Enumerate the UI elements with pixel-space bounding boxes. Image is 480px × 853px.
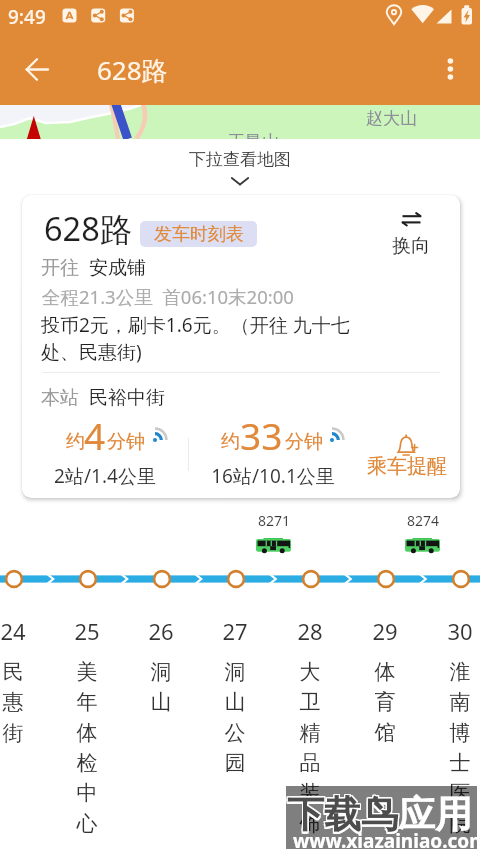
staticText: 体 [361,659,409,685]
staticText: 体 [63,720,111,746]
button[interactable]: 24 [0,616,38,853]
staticText: 检 [63,750,111,776]
staticText: 公 [211,720,259,746]
staticText: 8274 [393,511,453,530]
staticText: 饰 [286,811,334,837]
button[interactable]: 29 [362,616,410,853]
staticText: 28 [286,616,334,646]
staticText: www.xiazainiao.com [293,828,480,853]
staticText: 下载鸟 [287,791,398,838]
staticText: 山 [211,689,259,715]
staticText: 山 [137,689,185,715]
staticText: 换向 [392,234,430,258]
staticText: 25 [63,616,111,646]
staticText: 心 [63,811,111,837]
staticText: 29 [361,616,409,646]
staticText: 民裕中街 [89,386,165,410]
staticText: 应用 [398,791,472,838]
staticText: 27 [211,616,259,646]
staticText: 下载鸟 [288,793,399,840]
button[interactable] [381,208,441,260]
staticText: 街 [0,720,37,746]
staticText: 卫 [286,689,334,715]
staticText: 下载鸟 [287,793,398,840]
staticText: 下载鸟 [288,791,399,838]
staticText: 赵大山 [366,108,417,129]
staticText: 中 [63,780,111,806]
staticText: 30 [436,616,480,646]
staticText: 年 [63,689,111,715]
staticText: 精 [286,720,334,746]
staticText: 洞 [211,659,259,685]
button[interactable]: 25 [64,616,112,853]
staticText: 下拉查看地图 [189,149,291,170]
staticText: 投币2元，刷卡1.6元。（开往 九十七处、民惠街) [41,312,359,365]
staticText: 9:49 [8,4,46,30]
staticText: 分钟 [107,430,145,454]
button[interactable]: Back [14,46,61,93]
staticText: 士 [436,750,480,776]
staticText: 惠 [0,689,37,715]
staticText: 南 [436,689,480,715]
button[interactable]: 发车时刻表 [140,221,257,247]
staticText: 品 [286,750,334,776]
staticText: 美 [63,659,111,685]
staticText: 4 [84,410,106,460]
staticText: 下载鸟 [288,790,399,837]
staticText: 发车时刻表 [154,223,244,246]
staticText: 下载鸟 [286,790,397,837]
staticText: 本站 [41,386,79,410]
staticText: 8271 [244,511,304,530]
button[interactable]: 27 [212,616,260,853]
staticText: 下载鸟 [286,791,397,838]
button[interactable] [22,195,460,498]
staticText: 下载鸟 [286,793,397,840]
staticText: 安成铺 [89,256,146,280]
staticText: 王昂山 [228,131,279,152]
button[interactable]: 下拉查看地图 [160,143,320,191]
staticText: 博 [436,720,480,746]
staticText: 628路 [97,52,168,88]
staticText: 淮 [436,659,480,685]
staticText: 装 [286,780,334,806]
button[interactable]: 26 [138,616,186,853]
staticText: 下载鸟 [287,790,398,837]
staticText: 24 [0,616,37,646]
staticText: 约 [221,430,240,454]
button[interactable] [370,430,448,478]
staticText: 洞 [137,659,185,685]
staticText: 园 [211,750,259,776]
staticText: 628路 [44,206,133,250]
staticText: 33 [240,410,283,460]
staticText: 下载鸟 [287,791,398,838]
staticText: 育 [361,689,409,715]
button[interactable]: 8271 [244,508,304,556]
staticText: 全程21.3公里 首06:10末20:00 [42,284,294,309]
staticText: 馆 [361,720,409,746]
staticText: 乘车提醒 [367,454,447,479]
staticText: 约 [66,430,85,454]
staticText: 26 [137,616,185,646]
staticText: 2站/1.4公里 [5,463,205,489]
button[interactable]: 28 [287,616,335,853]
button[interactable]: 8274 [393,508,453,556]
staticText: 16站/10.1公里 [173,463,373,489]
staticText: 开往 [41,256,79,280]
staticText: 分钟 [285,430,323,454]
staticText: 院 [436,811,480,837]
staticText: 大 [286,659,334,685]
staticText: 民 [0,659,37,685]
button[interactable]: More options [432,47,469,84]
staticText: 医 [436,780,480,806]
button[interactable]: 30 [437,616,480,853]
